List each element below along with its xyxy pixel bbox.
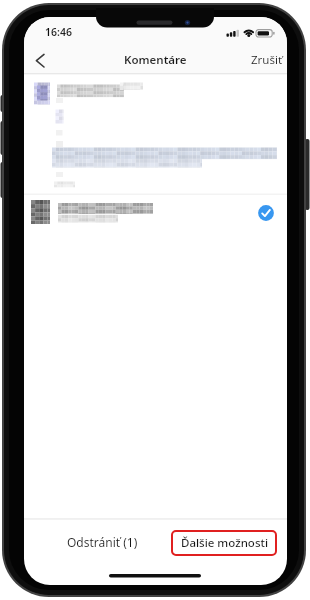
staticText: Ďalšie možnosti [181,535,268,551]
staticText: Odstrániť (1) [67,534,138,550]
button[interactable]: Odstrániť (1) [48,527,156,557]
button[interactable]: Ďalšie možnosti [171,530,277,556]
button[interactable]: Zrušiť [220,47,283,72]
staticText: Zrušiť [251,52,283,68]
button[interactable] [24,195,287,232]
staticText: Komentáre [124,52,187,68]
button[interactable] [27,46,55,74]
button[interactable] [24,77,287,193]
staticText: 16:46 [45,25,72,39]
